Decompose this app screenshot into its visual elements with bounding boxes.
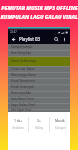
button[interactable]: Musik: [50, 118, 70, 130]
button[interactable]: Pamit Selamanya: [8, 56, 70, 66]
button[interactable]: Search: [53, 36, 60, 43]
staticText: 3+: [37, 118, 41, 123]
staticText: Lagu Galau Viral: [11, 103, 35, 107]
staticText: KUMPULAN LAGU GALAU VIRAL: [0, 13, 78, 20]
button[interactable]: 1 rb+: [8, 118, 28, 130]
staticText: Rindu Setengah: [11, 85, 35, 89]
button[interactable]: Hati Yang Kau: [8, 50, 70, 56]
button[interactable]: Rindu Setengah: [8, 84, 70, 90]
staticText: Playlist 03: [19, 36, 41, 42]
staticText: Hati Yang Kau: [11, 51, 32, 55]
button[interactable]: Kisah Sempurna: [8, 78, 70, 84]
staticText: Rating: [35, 126, 44, 130]
staticText: Musik: [55, 118, 65, 123]
staticText: Tak Ingin Usai: [11, 108, 32, 112]
staticText: Menunggu Kamu: [11, 73, 37, 77]
staticText: Unduhan: [12, 126, 24, 130]
button[interactable]: More options: [61, 36, 68, 43]
button[interactable]: Lagu Galau Viral: [8, 102, 70, 108]
button[interactable]: Menunggu Kamu: [8, 72, 70, 78]
staticText: 1 rb+: [14, 118, 23, 123]
button[interactable]: Satu Rasa Cinta: [8, 96, 70, 102]
staticText: PEMUTAR MUSIK MP3 OFFLINE: [1, 4, 78, 11]
button[interactable]: Back: [10, 36, 17, 43]
button[interactable]: Sampai Jumpa: [8, 44, 70, 50]
button[interactable]: 3+: [29, 118, 49, 130]
staticText: Sampai Jumpa: [11, 45, 32, 49]
staticText: Harusnya Aku: [11, 91, 32, 95]
button[interactable]: Tak Ingin Usai: [8, 108, 70, 112]
button[interactable]: Harusnya Aku: [8, 90, 70, 96]
staticText: Pamit Selamanya: [11, 59, 37, 63]
staticText: Kategori: [55, 126, 66, 130]
staticText: 22:47: [10, 30, 17, 34]
button[interactable]: Cinta Luar Biasa: [8, 66, 70, 72]
staticText: Cinta Luar Biasa: [11, 67, 35, 71]
staticText: Kisah Sempurna: [11, 79, 35, 83]
staticText: Satu Rasa Cinta: [11, 97, 34, 101]
